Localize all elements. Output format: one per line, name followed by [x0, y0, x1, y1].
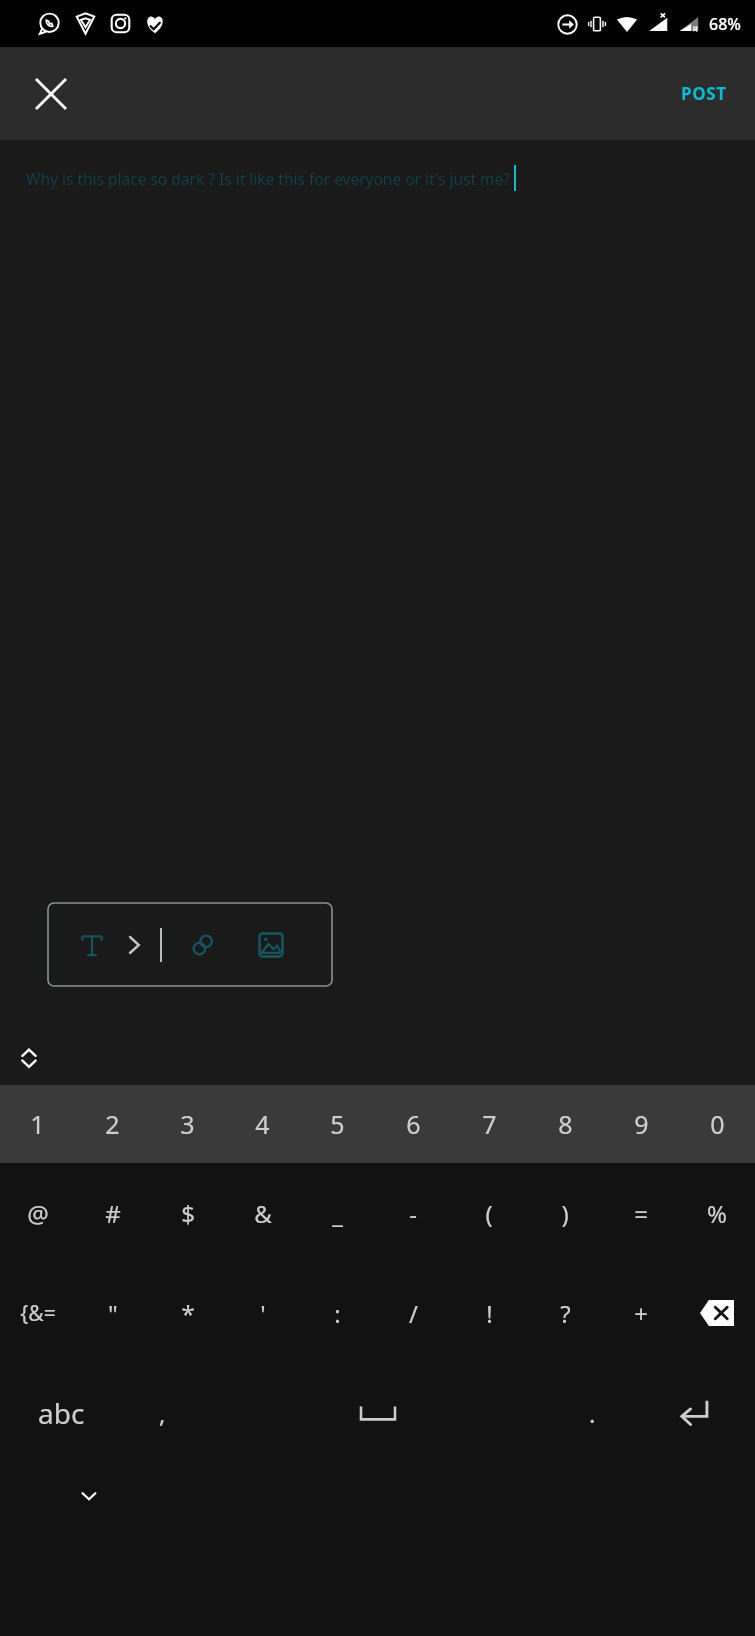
staticText: 6: [406, 1107, 421, 1141]
button[interactable]: :: [300, 1263, 375, 1363]
button[interactable]: abc: [0, 1363, 122, 1463]
staticText: %: [707, 1197, 727, 1230]
button[interactable]: 8: [527, 1085, 603, 1163]
button[interactable]: 7: [451, 1085, 527, 1163]
staticText: {&=: [20, 1299, 56, 1328]
staticText: @: [27, 1197, 49, 1230]
button[interactable]: ,: [122, 1363, 203, 1463]
staticText: 3: [180, 1107, 195, 1141]
button[interactable]: *: [150, 1263, 225, 1363]
button[interactable]: -: [375, 1163, 451, 1263]
staticText: 8: [558, 1107, 573, 1141]
button[interactable]: 0: [679, 1085, 755, 1163]
staticText: POST: [681, 82, 727, 105]
staticText: 4: [255, 1107, 270, 1141]
staticText: 1: [30, 1107, 45, 1141]
staticText: 7: [482, 1107, 497, 1141]
staticText: Why is this place so dark ? Is it like t…: [26, 168, 510, 189]
staticText: 0: [710, 1107, 725, 1141]
button[interactable]: @: [0, 1163, 75, 1263]
button[interactable]: POST: [667, 72, 741, 115]
button[interactable]: {&=: [0, 1263, 75, 1363]
button[interactable]: Enter: [633, 1363, 755, 1463]
staticText: ?: [560, 1297, 571, 1330]
staticText: 68%: [709, 13, 741, 35]
button[interactable]: Close: [20, 63, 82, 125]
staticText: ': [260, 1297, 266, 1330]
button[interactable]: &: [225, 1163, 300, 1263]
button[interactable]: ?: [527, 1263, 603, 1363]
button[interactable]: 6: [375, 1085, 451, 1163]
button[interactable]: =: [603, 1163, 679, 1263]
staticText: 9: [634, 1107, 649, 1141]
button[interactable]: Insert image: [248, 922, 294, 968]
staticText: :: [334, 1297, 341, 1330]
staticText: .: [589, 1397, 596, 1430]
staticText: ,: [159, 1397, 166, 1430]
button[interactable]: More formatting: [114, 925, 154, 965]
button[interactable]: (: [451, 1163, 527, 1263]
button[interactable]: 5: [300, 1085, 375, 1163]
staticText: =: [634, 1197, 648, 1230]
button[interactable]: Hide keyboard: [68, 1475, 110, 1517]
staticText: 5: [330, 1107, 345, 1141]
staticText: +: [634, 1297, 648, 1330]
staticText: #: [105, 1197, 121, 1230]
button[interactable]: /: [375, 1263, 451, 1363]
button[interactable]: +: [603, 1263, 679, 1363]
staticText: !: [486, 1297, 493, 1330]
button[interactable]: !: [451, 1263, 527, 1363]
button[interactable]: 2: [75, 1085, 150, 1163]
button[interactable]: #: [75, 1163, 150, 1263]
button[interactable]: Space: [203, 1363, 552, 1463]
button[interactable]: ": [75, 1263, 150, 1363]
staticText: 2: [105, 1107, 120, 1141]
button[interactable]: $: [150, 1163, 225, 1263]
button[interactable]: _: [300, 1163, 375, 1263]
button[interactable]: Insert link: [180, 922, 226, 968]
staticText: $: [181, 1197, 195, 1230]
button[interactable]: 4: [225, 1085, 300, 1163]
button[interactable]: ): [527, 1163, 603, 1263]
staticText: -: [409, 1197, 417, 1230]
button[interactable]: 9: [603, 1085, 679, 1163]
staticText: (: [485, 1197, 493, 1230]
staticText: _: [332, 1197, 343, 1230]
button[interactable]: %: [679, 1163, 755, 1263]
staticText: /: [409, 1297, 418, 1330]
staticText: *: [181, 1297, 195, 1330]
button[interactable]: 1: [0, 1085, 75, 1163]
staticText: ): [561, 1197, 569, 1230]
button[interactable]: ': [225, 1263, 300, 1363]
staticText: ": [108, 1297, 118, 1330]
button[interactable]: Expand editor: [6, 1035, 52, 1081]
button[interactable]: Backspace: [679, 1263, 755, 1363]
button[interactable]: Text format: [70, 923, 114, 967]
button[interactable]: 3: [150, 1085, 225, 1163]
button[interactable]: .: [552, 1363, 633, 1463]
staticText: &: [254, 1197, 272, 1230]
staticText: abc: [38, 1394, 85, 1432]
